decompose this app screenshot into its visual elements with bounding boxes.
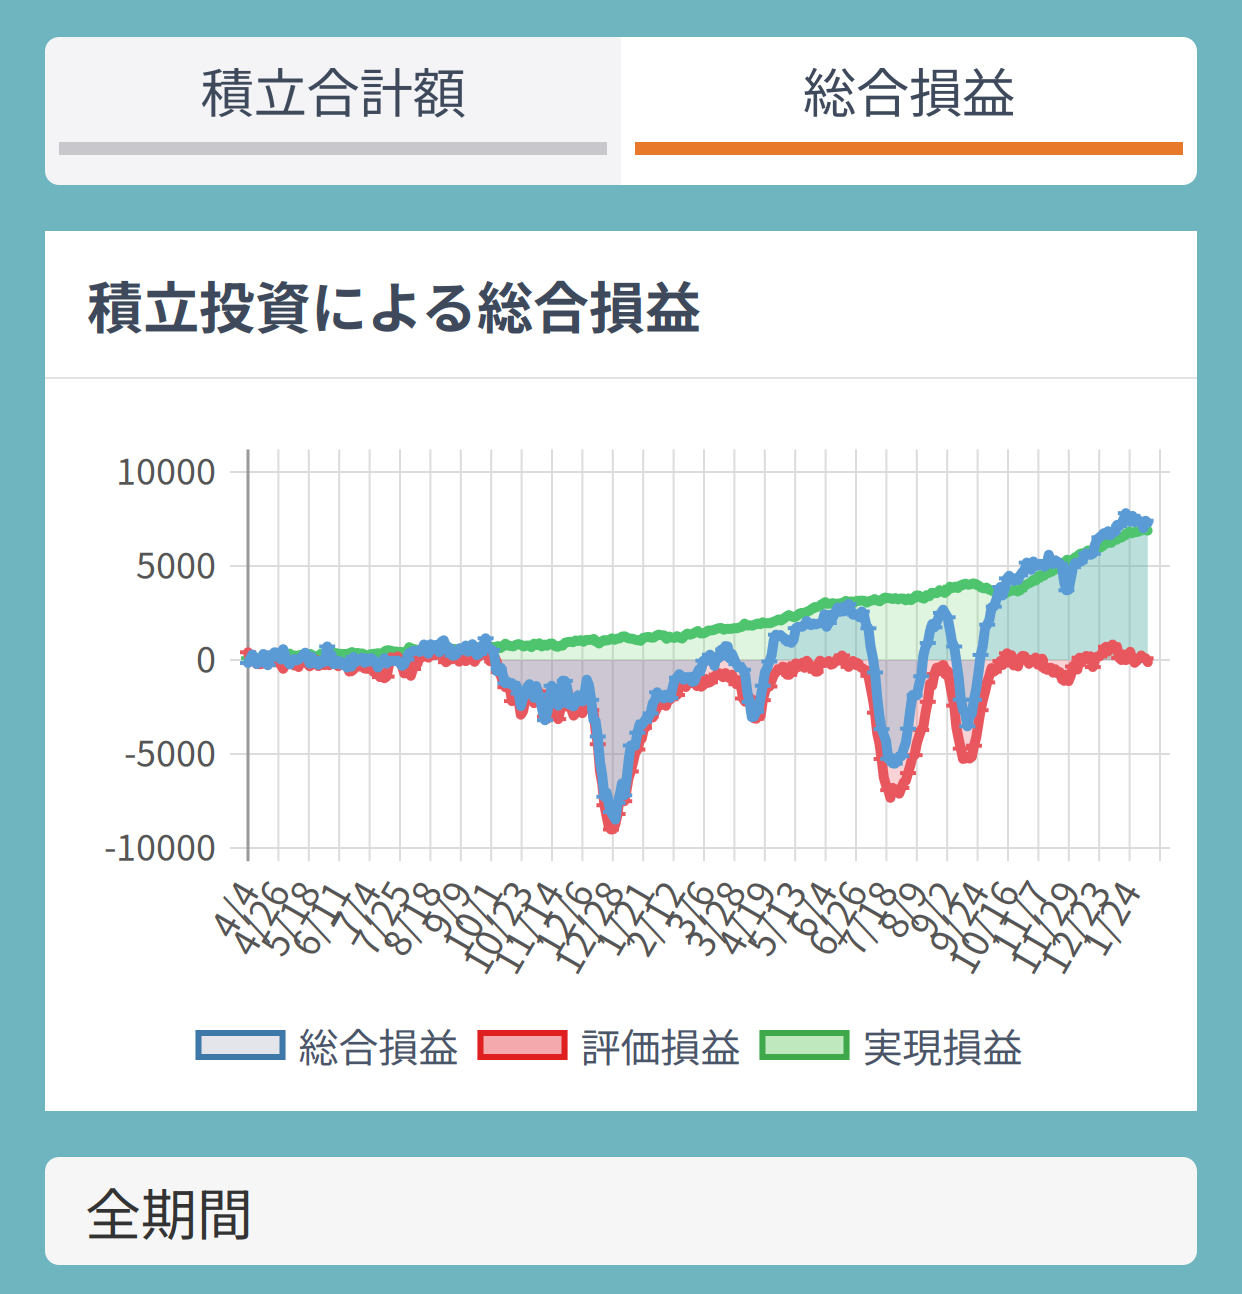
staticText: 8/18 [401,943,479,997]
staticText: 1/21 [614,943,692,997]
button[interactable]: 総合損益 [621,37,1197,185]
staticText: 9/9 [453,943,510,997]
staticText: -10000 [104,819,216,871]
staticText: 0 [196,631,216,683]
staticText: 実現損益 [862,1016,1022,1074]
staticText: 6/11 [310,943,388,997]
staticText: 4/26 [249,943,327,997]
staticText: 3/28 [705,943,783,997]
staticText: 2/12 [645,943,723,997]
button[interactable]: 全期間 [45,1157,1197,1265]
staticText: 11/14 [502,943,601,997]
staticText: 12/28 [563,943,662,997]
staticText: 5000 [136,537,216,589]
staticText: 8/9 [909,943,966,997]
staticText: 4/4 [240,943,297,997]
staticText: 6/4 [818,943,875,997]
staticText: 総合損益 [298,1016,458,1074]
staticText: 10/16 [958,943,1057,997]
staticText: 5/13 [766,943,844,997]
staticText: 5/18 [280,943,358,997]
staticText: 積立投資による総合損益 [87,263,701,345]
staticText: 11/7 [1009,943,1087,997]
staticText: -5000 [124,725,216,777]
staticText: 9/24 [949,943,1027,997]
staticText: 10000 [116,443,216,495]
staticText: 10/23 [472,943,571,997]
staticText: 評価損益 [580,1016,740,1074]
staticText: 6/26 [827,943,905,997]
staticText: 積立合計額 [200,51,465,128]
staticText: 4/19 [736,943,814,997]
staticText: 総合損益 [803,51,1015,128]
staticText: 11/29 [1019,943,1118,997]
staticText: 9/2 [939,943,996,997]
staticText: 12/6 [553,943,631,997]
staticText: 3/6 [696,943,753,997]
staticText: 12/23 [1049,943,1148,997]
staticText: 7/4 [362,943,419,997]
staticText: 全期間 [85,1170,253,1252]
staticText: 7/25 [371,943,449,997]
button[interactable]: 積立合計額 [45,37,621,185]
staticText: 7/18 [857,943,935,997]
staticText: 10/1 [462,943,540,997]
staticText: 1/24 [1101,943,1179,997]
